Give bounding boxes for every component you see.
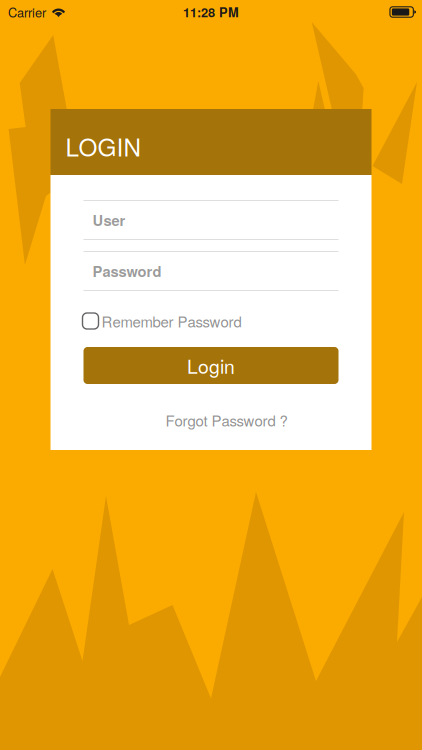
button[interactable]: Forgot Password ? (83, 412, 338, 428)
button[interactable]: Login (83, 347, 338, 384)
staticText: Carrier (8, 3, 46, 21)
staticText: Login (187, 352, 235, 379)
button[interactable]: Remember Password (83, 312, 338, 330)
staticText: LOGIN (65, 129, 141, 163)
staticText: Forgot Password ? (165, 409, 287, 431)
staticText: Remember Password (101, 310, 241, 332)
staticText: Password (92, 260, 161, 281)
staticText: User (92, 209, 125, 230)
staticText: 11:28 PM (183, 3, 239, 21)
